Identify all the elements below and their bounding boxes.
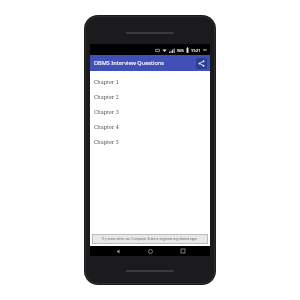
staticText: 11:21 xyxy=(191,48,201,53)
staticText: am xyxy=(203,48,208,52)
button[interactable]: Chapter 2 xyxy=(90,89,210,104)
button[interactable]: Chapter 3 xyxy=(90,104,210,119)
button[interactable]: Try some other our Computer Science engi… xyxy=(93,235,207,243)
button[interactable]: Recent apps xyxy=(178,246,188,256)
button[interactable]: Back xyxy=(113,246,123,256)
staticText: 96% xyxy=(177,48,184,53)
staticText: DBMS Interview Questions xyxy=(94,59,164,67)
staticText: Chapter 3 xyxy=(94,108,119,115)
staticText: Try some other our Computer Science engi… xyxy=(102,237,198,241)
button[interactable]: Home xyxy=(145,246,155,256)
staticText: Chapter 5 xyxy=(94,138,119,145)
button[interactable]: Chapter 4 xyxy=(90,119,210,134)
button[interactable]: Chapter 1 xyxy=(90,74,210,89)
button[interactable]: Chapter 5 xyxy=(90,134,210,149)
staticText: Chapter 2 xyxy=(94,93,119,100)
staticText: Chapter 1 xyxy=(94,78,119,85)
staticText: Chapter 4 xyxy=(94,123,119,130)
button[interactable]: Share xyxy=(196,58,207,69)
